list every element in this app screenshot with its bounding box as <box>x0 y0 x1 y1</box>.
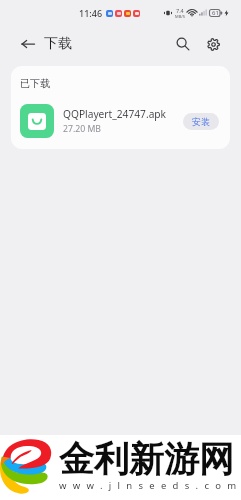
staticText: www.jlnseeds.com <box>59 479 241 492</box>
staticText: 下载 <box>44 35 72 53</box>
staticText: 金利新游网 <box>59 437 234 481</box>
button[interactable]: 安装 <box>183 113 219 130</box>
button[interactable]: Settings <box>197 28 229 60</box>
button[interactable]: QQPlayert_24747.apk <box>11 93 230 149</box>
staticText: QQPlayert_24747.apk <box>63 107 167 121</box>
button[interactable]: Back <box>12 28 44 60</box>
staticText: 27.20 MB <box>63 123 101 135</box>
staticText: 11:46 <box>79 7 103 19</box>
staticText: 安装 <box>192 116 210 127</box>
staticText: 61 <box>212 9 219 17</box>
staticText: 7.4 <box>176 7 184 14</box>
button[interactable]: Search <box>165 28 197 60</box>
staticText: 已下载 <box>20 77 50 90</box>
staticText: MB/S <box>175 14 185 19</box>
